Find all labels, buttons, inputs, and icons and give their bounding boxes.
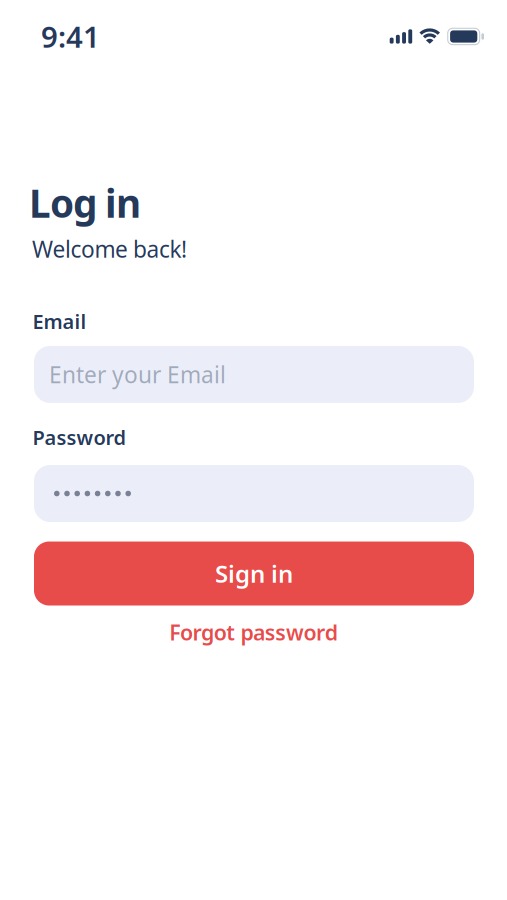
staticText: Welcome back! bbox=[32, 234, 187, 264]
button[interactable]: Enter your Email bbox=[34, 346, 474, 403]
staticText: Enter your Email bbox=[49, 359, 226, 389]
staticText: Email bbox=[32, 308, 86, 334]
staticText: 9:41 bbox=[41, 17, 100, 56]
staticText: Log in bbox=[29, 177, 141, 228]
staticText: Forgot password bbox=[169, 618, 338, 646]
staticText: Sign in bbox=[215, 558, 293, 589]
button[interactable]: Sign in bbox=[34, 541, 474, 605]
button[interactable]: Password bbox=[34, 465, 474, 522]
button[interactable]: Forgot password bbox=[169, 618, 338, 646]
staticText: Password bbox=[32, 424, 126, 451]
